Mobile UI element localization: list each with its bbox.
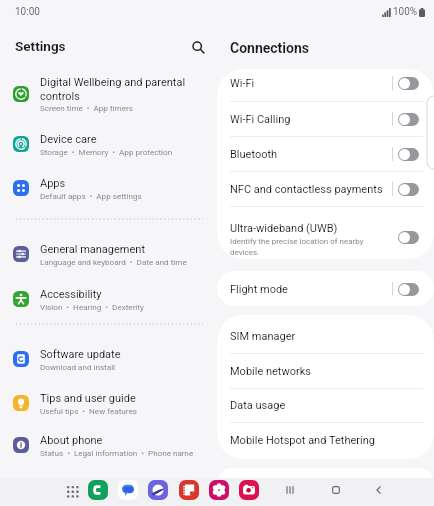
staticText: Download and install [40,362,116,371]
button[interactable]: Device care [0,125,217,163]
staticText: Storage • Memory • App protection [40,147,173,156]
staticText: 100% [393,6,418,18]
staticText: Wi-Fi [230,77,255,90]
button[interactable]: SIM manager [217,319,434,353]
button[interactable]: phone [88,480,108,500]
staticText: Data usage [230,399,286,412]
button[interactable]: Bluetooth [217,137,434,171]
staticText: Accessibility [40,288,102,301]
button[interactable]: All apps [62,481,82,501]
button[interactable]: Home [326,480,346,500]
button[interactable]: msg [118,480,138,500]
staticText: General management [40,243,145,256]
staticText: Vision • Hearing • Dexterity [40,302,144,311]
staticText: Apps [40,177,66,190]
staticText: Default apps • App settings [40,191,142,200]
staticText: 10:00 [15,6,40,18]
button[interactable]: Off switch [398,183,419,196]
button[interactable]: Mobile networks [217,354,434,388]
staticText: Wi-Fi Calling [230,113,291,126]
button[interactable]: Wi-Fi Calling [217,102,434,136]
staticText: Mobile networks [230,365,311,378]
button[interactable]: Software update [0,340,217,378]
button[interactable]: Off switch [398,283,419,296]
staticText: Software update [40,348,121,361]
staticText: SIM manager [230,330,296,343]
staticText: Status • Legal information • Phone name [40,448,194,457]
button[interactable]: Mobile Hotspot and Tethering [217,423,434,457]
button[interactable]: About phone [0,426,217,464]
staticText: Mobile Hotspot and Tethering [230,434,375,447]
button[interactable]: NFC and contactless payments [217,172,434,206]
button[interactable]: notes [179,480,199,500]
button[interactable]: Ultra-wideband (UWB) [217,215,434,259]
button[interactable]: Data usage [217,388,434,422]
button[interactable]: Back [369,480,389,500]
staticText: Settings [15,38,66,54]
button[interactable]: camera [239,480,259,500]
staticText: Ultra-wideband (UWB) [230,222,338,235]
button[interactable]: gallery [209,480,229,500]
button[interactable]: Wi-Fi [217,69,434,100]
button[interactable]: Off switch [398,231,419,244]
button[interactable]: Digital Wellbeing and parental controls [0,70,217,118]
staticText: Flight mode [230,283,288,296]
staticText: Screen time • App timers [40,103,133,112]
staticText: Connections [230,40,309,56]
staticText: Language and keyboard • Date and time [40,257,187,266]
button[interactable]: Flight mode [217,272,434,306]
button[interactable]: Apps [0,169,217,207]
staticText: About phone [40,434,103,447]
button[interactable]: Recents [280,480,300,500]
button[interactable]: Accessibility [0,280,217,318]
staticText: Identify the precise location of nearby … [230,237,364,257]
staticText: Device care [40,133,97,146]
staticText: Tips and user guide [40,392,136,405]
staticText: Useful tips • New features [40,406,137,415]
staticText: Digital Wellbeing and parental controls [40,76,227,102]
button[interactable]: Off switch [398,148,419,161]
button[interactable]: Tips and user guide [0,384,217,422]
staticText: NFC and contactless payments [230,183,383,196]
button[interactable]: Off switch [398,77,419,90]
staticText: Bluetooth [230,148,278,161]
button[interactable]: General management [0,235,217,273]
button[interactable]: Search [185,34,211,60]
button[interactable]: Off switch [398,113,419,126]
button[interactable]: internet [148,480,168,500]
